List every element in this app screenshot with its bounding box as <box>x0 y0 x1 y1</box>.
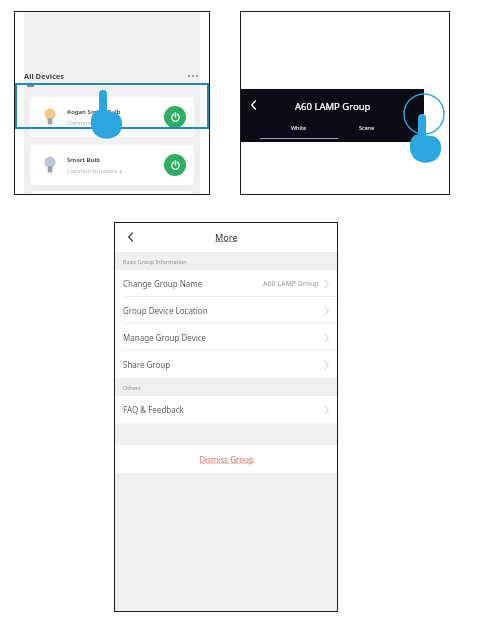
staticText: White <box>291 124 307 131</box>
staticText: Manage Group Device <box>123 332 207 343</box>
button[interactable]: Back <box>120 226 142 248</box>
button[interactable]: Dismiss Group <box>114 445 338 473</box>
staticText: Basic Group Information <box>123 258 187 265</box>
staticText: Others <box>123 384 141 391</box>
button[interactable]: Power toggle <box>164 106 186 128</box>
staticText: Kogan Smart Bulb <box>67 108 121 116</box>
staticText: Scene <box>359 124 375 131</box>
button[interactable]: Smart Bulb <box>30 145 194 185</box>
button[interactable]: Change Group Name <box>114 270 338 297</box>
staticText: FAQ & Feedback <box>123 404 184 415</box>
button[interactable]: Kogan Smart Bulb <box>30 97 194 137</box>
staticText: Change Group Name <box>123 278 203 289</box>
staticText: More <box>215 231 238 243</box>
button[interactable]: Power toggle <box>164 154 186 176</box>
staticText: Common Functions ∨ <box>67 119 123 126</box>
button[interactable]: Manage Group Device <box>114 324 338 351</box>
button[interactable]: Share Group <box>114 351 338 378</box>
button[interactable]: Group Device Location <box>114 297 338 324</box>
staticText: Dismiss Group <box>199 454 254 465</box>
button[interactable]: Edit <box>411 101 437 127</box>
staticText: A60 LAMP Group <box>295 100 371 113</box>
staticText: Smart Bulb <box>67 156 101 164</box>
button[interactable]: Back <box>246 97 262 113</box>
staticText: Share Group <box>123 359 171 370</box>
button[interactable]: FAQ & Feedback <box>114 396 338 423</box>
staticText: A60 LAMP Group <box>263 279 319 289</box>
staticText: All Devices <box>24 71 65 81</box>
staticText: Common Functions ∨ <box>67 167 123 174</box>
staticText: Group Device Location <box>123 305 208 316</box>
button[interactable]: More options <box>186 70 200 82</box>
